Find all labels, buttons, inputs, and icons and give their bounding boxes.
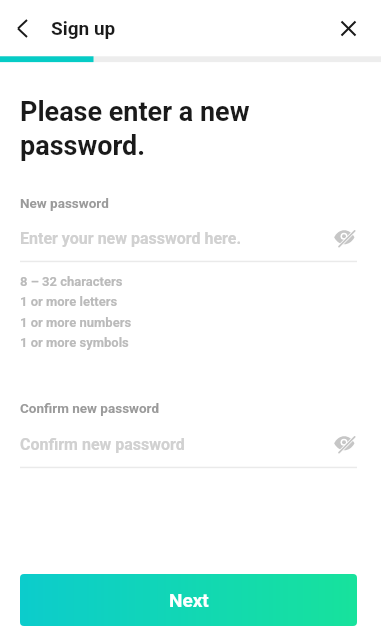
button[interactable]: Close <box>328 8 368 48</box>
staticText: Confirm new password <box>20 400 160 416</box>
button[interactable]: Show password <box>331 431 359 459</box>
staticText: Next <box>169 589 209 611</box>
button[interactable]: Next <box>20 574 357 626</box>
staticText: Enter your new password here. <box>20 229 242 248</box>
staticText: Confirm new password <box>20 435 185 454</box>
staticText: 1 or more symbols <box>20 335 129 350</box>
staticText: 8 – 32 characters <box>20 274 123 289</box>
staticText: 1 or more letters <box>20 294 118 309</box>
staticText: 1 or more numbers <box>20 315 132 330</box>
staticText: Please enter a new password. <box>20 96 270 162</box>
button[interactable]: Show password <box>331 225 359 253</box>
staticText: Sign up <box>51 17 116 39</box>
button[interactable]: Back <box>2 8 42 48</box>
staticText: New password <box>20 195 109 211</box>
